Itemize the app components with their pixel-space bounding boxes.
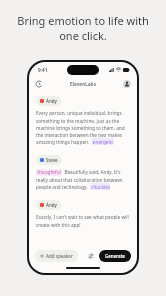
button[interactable]: Add speaker: [35, 250, 78, 262]
button[interactable]: History: [34, 79, 44, 89]
staticText: Steve: [46, 157, 58, 163]
staticText: Every person, unique individual, brings …: [36, 110, 130, 145]
button[interactable]: Andy: [36, 96, 61, 106]
staticText: ElevenLabs: [70, 81, 97, 88]
button[interactable]: Steve: [36, 155, 62, 165]
staticText: Add speaker: [46, 253, 73, 259]
staticText: 9:41: [38, 67, 48, 73]
button[interactable]: Settings: [85, 250, 96, 261]
staticText: Generate: [105, 253, 125, 259]
staticText: thoughtful Beautifully said, Andy. It's …: [36, 169, 130, 190]
staticText: Andy: [46, 98, 57, 104]
staticText: Exactly. I can't wait to see what people…: [36, 214, 130, 228]
button[interactable]: Andy: [36, 200, 61, 210]
button[interactable]: Generate: [99, 250, 131, 262]
button[interactable]: Profile: [123, 80, 131, 88]
staticText: Bring emotion to life with one click.: [10, 13, 156, 43]
staticText: Andy: [46, 202, 57, 208]
